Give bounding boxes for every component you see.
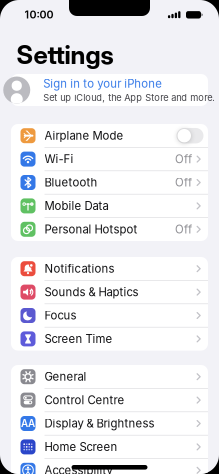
staticText: Display & Brightness	[44, 417, 154, 430]
button[interactable]: Notifications	[11, 257, 208, 280]
staticText: Off	[175, 176, 192, 189]
button[interactable]: Sign in to your iPhone	[11, 74, 208, 106]
button[interactable]: Wi-Fi	[11, 147, 208, 171]
staticText: Mobile Data	[44, 199, 108, 213]
staticText: Sounds & Haptics	[44, 285, 138, 299]
button[interactable]: Sounds & Haptics	[11, 280, 208, 304]
staticText: General	[44, 370, 86, 383]
staticText: Screen Time	[44, 332, 112, 346]
button[interactable]: Home Screen	[11, 435, 208, 459]
button[interactable]: Personal Hotspot	[11, 218, 208, 241]
button[interactable]: Mobile Data	[11, 194, 208, 218]
staticText: Airplane Mode	[44, 129, 123, 142]
button[interactable]: AA	[11, 412, 208, 435]
button[interactable]: Focus	[11, 304, 208, 327]
staticText: Off	[175, 222, 192, 236]
staticText: Bluetooth	[44, 176, 97, 189]
staticText: Accessibility	[44, 463, 112, 474]
button[interactable]: Screen Time	[11, 327, 208, 351]
staticText: Sign in to your iPhone	[43, 77, 162, 90]
button[interactable]: Accessibility	[11, 459, 208, 474]
button[interactable]: Control Centre	[11, 388, 208, 412]
staticText: Wi-Fi	[44, 152, 73, 166]
staticText: Notifications	[44, 262, 114, 275]
staticText: Off	[175, 152, 192, 166]
staticText: Personal Hotspot	[44, 222, 137, 236]
staticText: Home Screen	[44, 440, 117, 454]
staticText: Settings	[16, 39, 113, 70]
staticText: Focus	[44, 309, 76, 322]
staticText: Set up iCloud, the App Store and more.	[43, 92, 215, 103]
staticText: AA	[21, 417, 35, 429]
button[interactable]: Bluetooth	[11, 171, 208, 194]
button[interactable]: Airplane Mode	[176, 128, 203, 143]
button[interactable]: General	[11, 365, 208, 388]
staticText: Control Centre	[44, 393, 124, 407]
staticText: 10:00	[24, 8, 53, 21]
